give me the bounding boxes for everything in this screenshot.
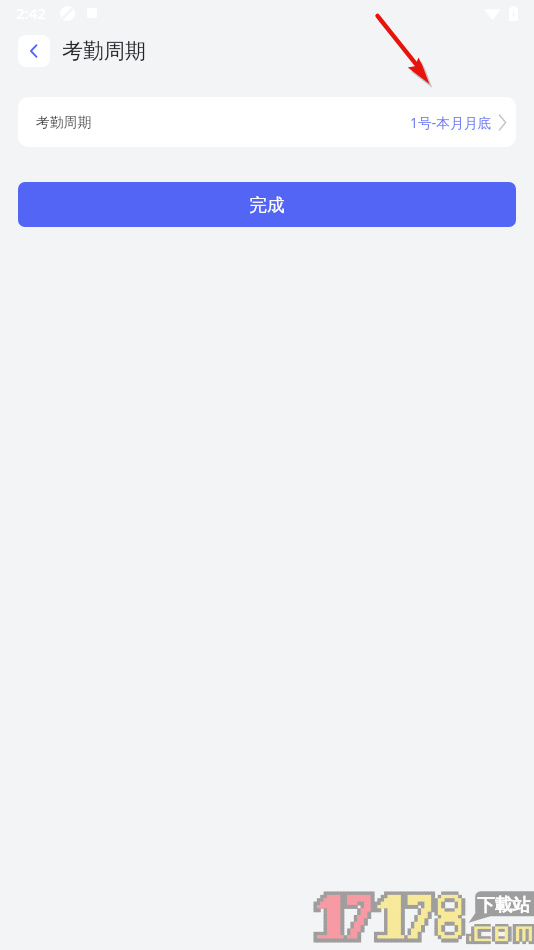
staticText: 2:42 [16, 3, 46, 23]
button[interactable]: 考勤周期 [18, 97, 516, 147]
staticText: 1号-本月月底 [410, 113, 492, 132]
button[interactable]: Back [18, 35, 50, 67]
staticText: 考勤周期 [36, 114, 92, 131]
button[interactable]: 完成 [18, 182, 516, 227]
staticText: 完成 [249, 194, 285, 216]
staticText: 下載站 [477, 894, 530, 916]
staticText: 考勤周期 [62, 38, 146, 64]
